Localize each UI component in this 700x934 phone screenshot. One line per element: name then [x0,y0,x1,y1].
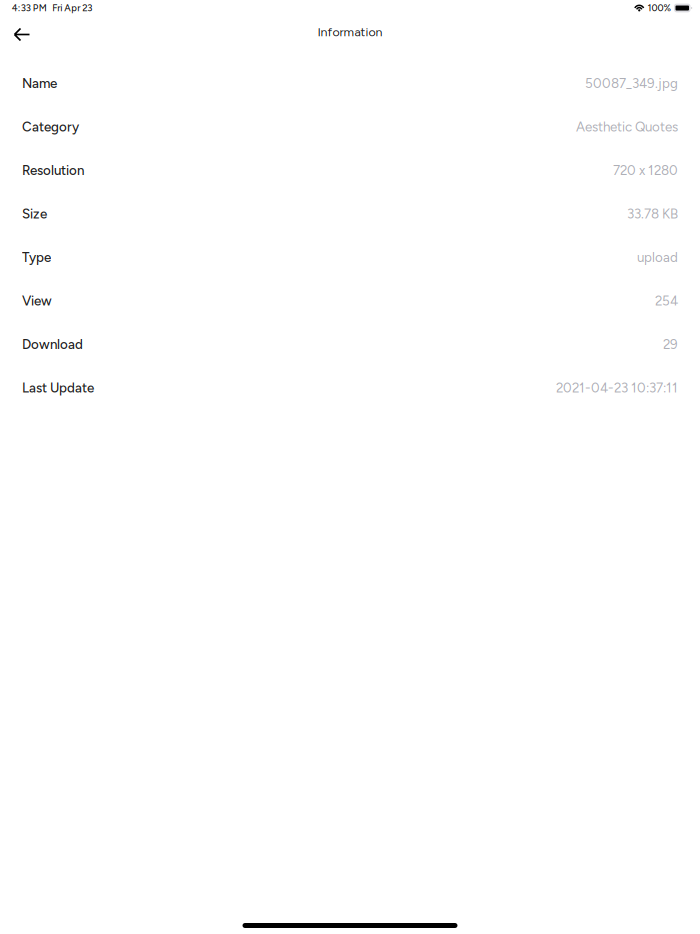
staticText: View [22,293,52,309]
staticText: Category [22,119,79,135]
staticText: 254 [655,293,678,309]
staticText: Aesthetic Quotes [576,119,678,135]
staticText: 2021-04-23 10:37:11 [556,380,678,396]
staticText: 50087_349.jpg [585,75,678,91]
staticText: Last Update [22,380,94,396]
staticText: 100% [647,2,671,14]
staticText: Size [22,206,47,222]
staticText: 33.78 KB [627,206,678,222]
staticText: Resolution [22,162,84,178]
button[interactable]: Back [0,19,44,49]
staticText: Download [22,336,83,352]
staticText: upload [637,249,678,265]
staticText: Type [22,249,51,265]
staticText: Name [22,75,57,91]
staticText: 29 [663,336,678,352]
staticText: 4:33 PM [12,2,47,14]
staticText: Fri Apr 23 [52,2,92,14]
staticText: Information [317,25,382,39]
staticText: 720 x 1280 [613,162,678,178]
